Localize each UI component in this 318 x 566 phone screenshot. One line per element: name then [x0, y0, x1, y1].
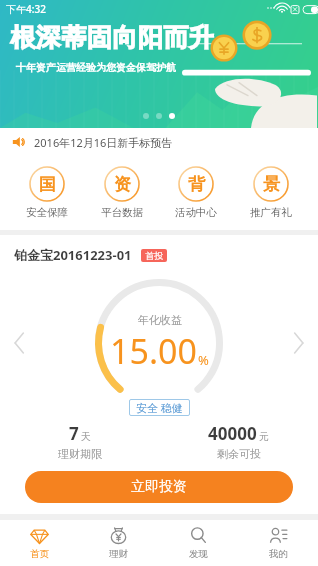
button[interactable]: 国 [20, 165, 74, 221]
staticText: 根深蒂固向阳而升 [10, 22, 214, 53]
button[interactable]: 背 [169, 165, 223, 221]
staticText: 安全保障 [26, 206, 68, 219]
staticText: 7 [69, 422, 79, 445]
button[interactable]: 首页 [0, 520, 79, 566]
staticText: 安全 稳健 [136, 400, 183, 415]
staticText: % [198, 351, 209, 369]
staticText: 下午4:32 [6, 2, 46, 16]
staticText: 15.00 [110, 328, 197, 374]
button[interactable]: 我的 [238, 520, 318, 566]
staticText: 元 [259, 430, 269, 443]
staticText: 理财期限 [58, 447, 102, 461]
staticText: 平台数据 [101, 206, 143, 219]
other: Announcement [12, 135, 26, 149]
staticText: 背 [188, 174, 205, 195]
staticText: 立即投资 [131, 478, 187, 496]
staticText: 资 [114, 174, 131, 195]
button[interactable]: 资 [95, 165, 149, 221]
button[interactable]: Previous product [14, 333, 25, 353]
staticText: 活动中心 [175, 206, 217, 219]
staticText: 理财 [109, 548, 128, 560]
staticText: 2016年12月16日新手标预告 [34, 135, 173, 150]
staticText: 首投 [145, 250, 163, 261]
staticText: 景 [263, 174, 280, 195]
staticText: 铂金宝20161223-01 [14, 246, 132, 264]
button[interactable]: 发现 [158, 520, 238, 566]
staticText: 十年资产运营经验为您资金保驾护航 [16, 61, 176, 74]
staticText: 40000 [208, 422, 257, 445]
button[interactable]: Announcement [0, 128, 318, 156]
staticText: 剩余可投 [217, 447, 261, 461]
staticText: 推广有礼 [250, 206, 292, 219]
button[interactable]: 立即投资 [25, 471, 293, 503]
staticText: 我的 [269, 548, 288, 560]
staticText: 发现 [189, 548, 208, 560]
staticText: 首页 [30, 548, 49, 560]
staticText: 天 [81, 430, 91, 443]
button[interactable]: 景 [244, 165, 298, 221]
staticText: 国 [39, 174, 56, 195]
button[interactable]: 理财 [79, 520, 158, 566]
button[interactable]: Next product [293, 333, 304, 353]
staticText: 年化收益 [138, 313, 182, 327]
